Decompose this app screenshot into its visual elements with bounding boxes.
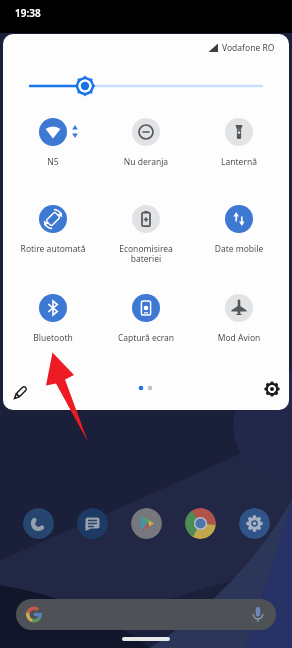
button[interactable] [185,508,216,539]
button[interactable] [225,205,253,233]
button[interactable] [16,599,276,630]
button[interactable] [39,205,67,233]
staticText: Rotire automată [7,243,99,255]
button[interactable] [3,34,289,104]
button[interactable] [225,118,253,146]
button[interactable] [131,508,162,539]
staticText: Nu deranja [100,156,192,168]
button[interactable] [225,294,253,322]
staticText: Date mobile [193,243,285,255]
staticText: Bluetooth [7,332,99,344]
button[interactable] [39,118,67,146]
button[interactable] [259,376,285,402]
staticText: 19:38 [15,6,41,20]
button[interactable] [77,508,108,539]
button[interactable] [132,118,160,146]
button[interactable] [239,508,270,539]
staticText: Vodafone RO [222,42,275,54]
staticText: Economisirea bateriei [100,243,192,265]
staticText: Captură ecran [100,332,192,344]
button[interactable] [7,380,33,406]
button[interactable] [132,294,160,322]
button[interactable] [23,508,54,539]
button[interactable] [132,205,160,233]
button[interactable] [39,294,67,322]
staticText: Lanternă [193,156,285,168]
staticText: Mod Avion [193,332,285,344]
staticText: N5 [7,156,99,168]
